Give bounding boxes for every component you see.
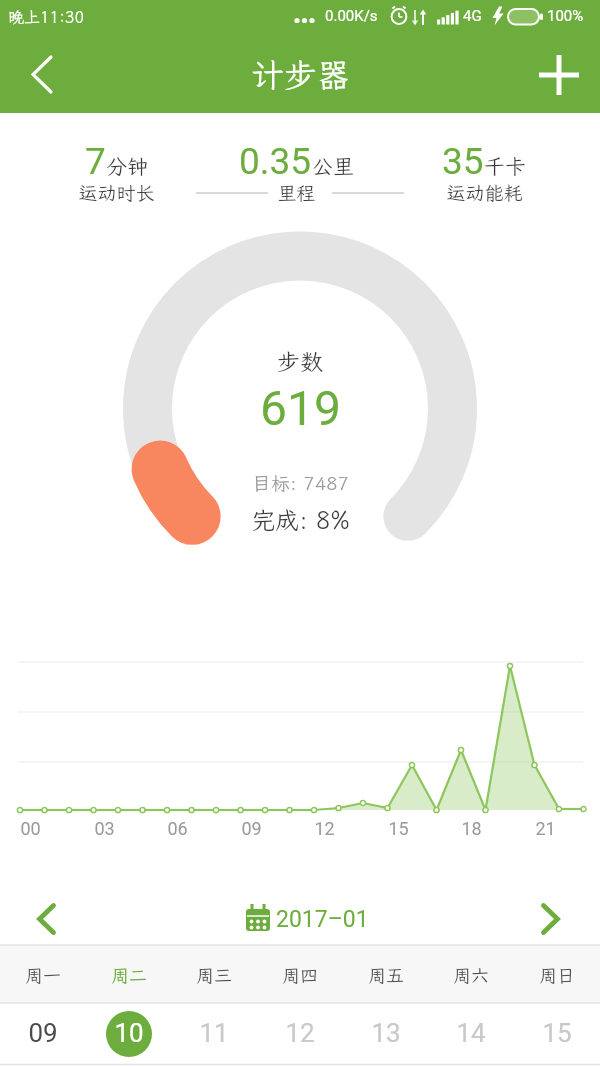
button[interactable]: 周一: [1, 947, 85, 1003]
staticText: 18: [461, 818, 482, 839]
staticText: 运动时长: [78, 180, 155, 205]
staticText: 00: [20, 818, 41, 839]
button[interactable]: 周日: [515, 947, 599, 1003]
staticText: 03: [94, 818, 115, 839]
button[interactable]: [16, 49, 66, 99]
button[interactable]: 10: [87, 1003, 171, 1063]
staticText: 目标: 7487: [252, 470, 349, 495]
button[interactable]: 09: [1, 1003, 85, 1063]
button[interactable]: [531, 899, 571, 939]
staticText: 14: [456, 1018, 486, 1048]
staticText: 13: [371, 1018, 401, 1048]
staticText: 周一: [25, 963, 61, 987]
staticText: 0.35: [239, 140, 312, 183]
staticText: 15: [388, 818, 409, 839]
staticText: 100%: [547, 7, 584, 25]
button[interactable]: 周二: [87, 947, 171, 1003]
staticText: 运动能耗: [446, 180, 523, 205]
staticText: 10: [114, 1018, 144, 1048]
staticText: 周日: [539, 963, 575, 987]
button[interactable]: 15: [515, 1003, 599, 1063]
staticText: 公里: [312, 152, 354, 180]
staticText: 35: [442, 140, 484, 183]
staticText: 完成: 8%: [251, 504, 350, 536]
staticText: 周四: [282, 963, 318, 987]
staticText: 4G: [463, 7, 482, 25]
staticText: 2017–01: [276, 906, 369, 933]
staticText: 21: [535, 818, 556, 839]
staticText: 12: [285, 1018, 315, 1048]
staticText: 0.00K/s: [325, 7, 378, 25]
staticText: 15: [542, 1018, 572, 1048]
staticText: 12: [314, 818, 335, 839]
button[interactable]: 周三: [172, 947, 256, 1003]
button[interactable]: [26, 899, 66, 939]
staticText: 周六: [453, 963, 489, 987]
staticText: 周二: [111, 963, 147, 987]
button[interactable]: 周四: [258, 947, 342, 1003]
staticText: 619: [260, 380, 341, 436]
staticText: 06: [167, 818, 188, 839]
staticText: 09: [241, 818, 262, 839]
button[interactable]: [534, 50, 584, 100]
staticText: 步数: [277, 346, 323, 376]
staticText: 周三: [196, 963, 232, 987]
staticText: 千卡: [484, 152, 526, 180]
button[interactable]: 14: [429, 1003, 513, 1063]
staticText: 09: [28, 1018, 58, 1048]
button[interactable]: 周五: [344, 947, 428, 1003]
button[interactable]: 11: [172, 1003, 256, 1063]
staticText: 分钟: [106, 152, 148, 180]
button[interactable]: [240, 895, 370, 943]
button[interactable]: 12: [258, 1003, 342, 1063]
button[interactable]: 周六: [429, 947, 513, 1003]
staticText: 11: [199, 1018, 229, 1048]
staticText: 晚上11:30: [8, 6, 85, 27]
button[interactable]: 13: [344, 1003, 428, 1063]
staticText: 7: [85, 140, 106, 183]
staticText: 里程: [277, 180, 316, 205]
staticText: 计步器: [251, 53, 350, 96]
staticText: 周五: [368, 963, 404, 987]
